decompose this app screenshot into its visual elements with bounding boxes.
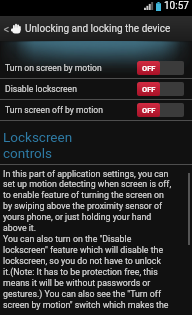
staticText: Turn screen off by motion [5,105,103,115]
staticText: Unlocking and locking the device [25,23,171,35]
staticText: Disable lockscreen [5,84,77,94]
button[interactable]: Navigate up [1,19,10,39]
button[interactable]: Disable lockscreen [0,79,192,99]
staticText: Turn on screen by motion [5,63,102,73]
button[interactable]: Toggle off [137,103,184,117]
staticText: In this part of application settings, yo… [3,169,172,311]
button[interactable]: Toggle off [137,61,184,75]
staticText: OFF [142,85,156,94]
staticText: Lockscreen controls [3,129,73,161]
button[interactable]: Toggle off [137,82,184,96]
staticText: 10:57 [164,0,189,12]
staticText: OFF [142,64,156,73]
staticText: OFF [142,106,156,115]
button[interactable]: Turn on screen by motion [0,58,192,78]
button[interactable]: Turn screen off by motion [0,100,192,120]
